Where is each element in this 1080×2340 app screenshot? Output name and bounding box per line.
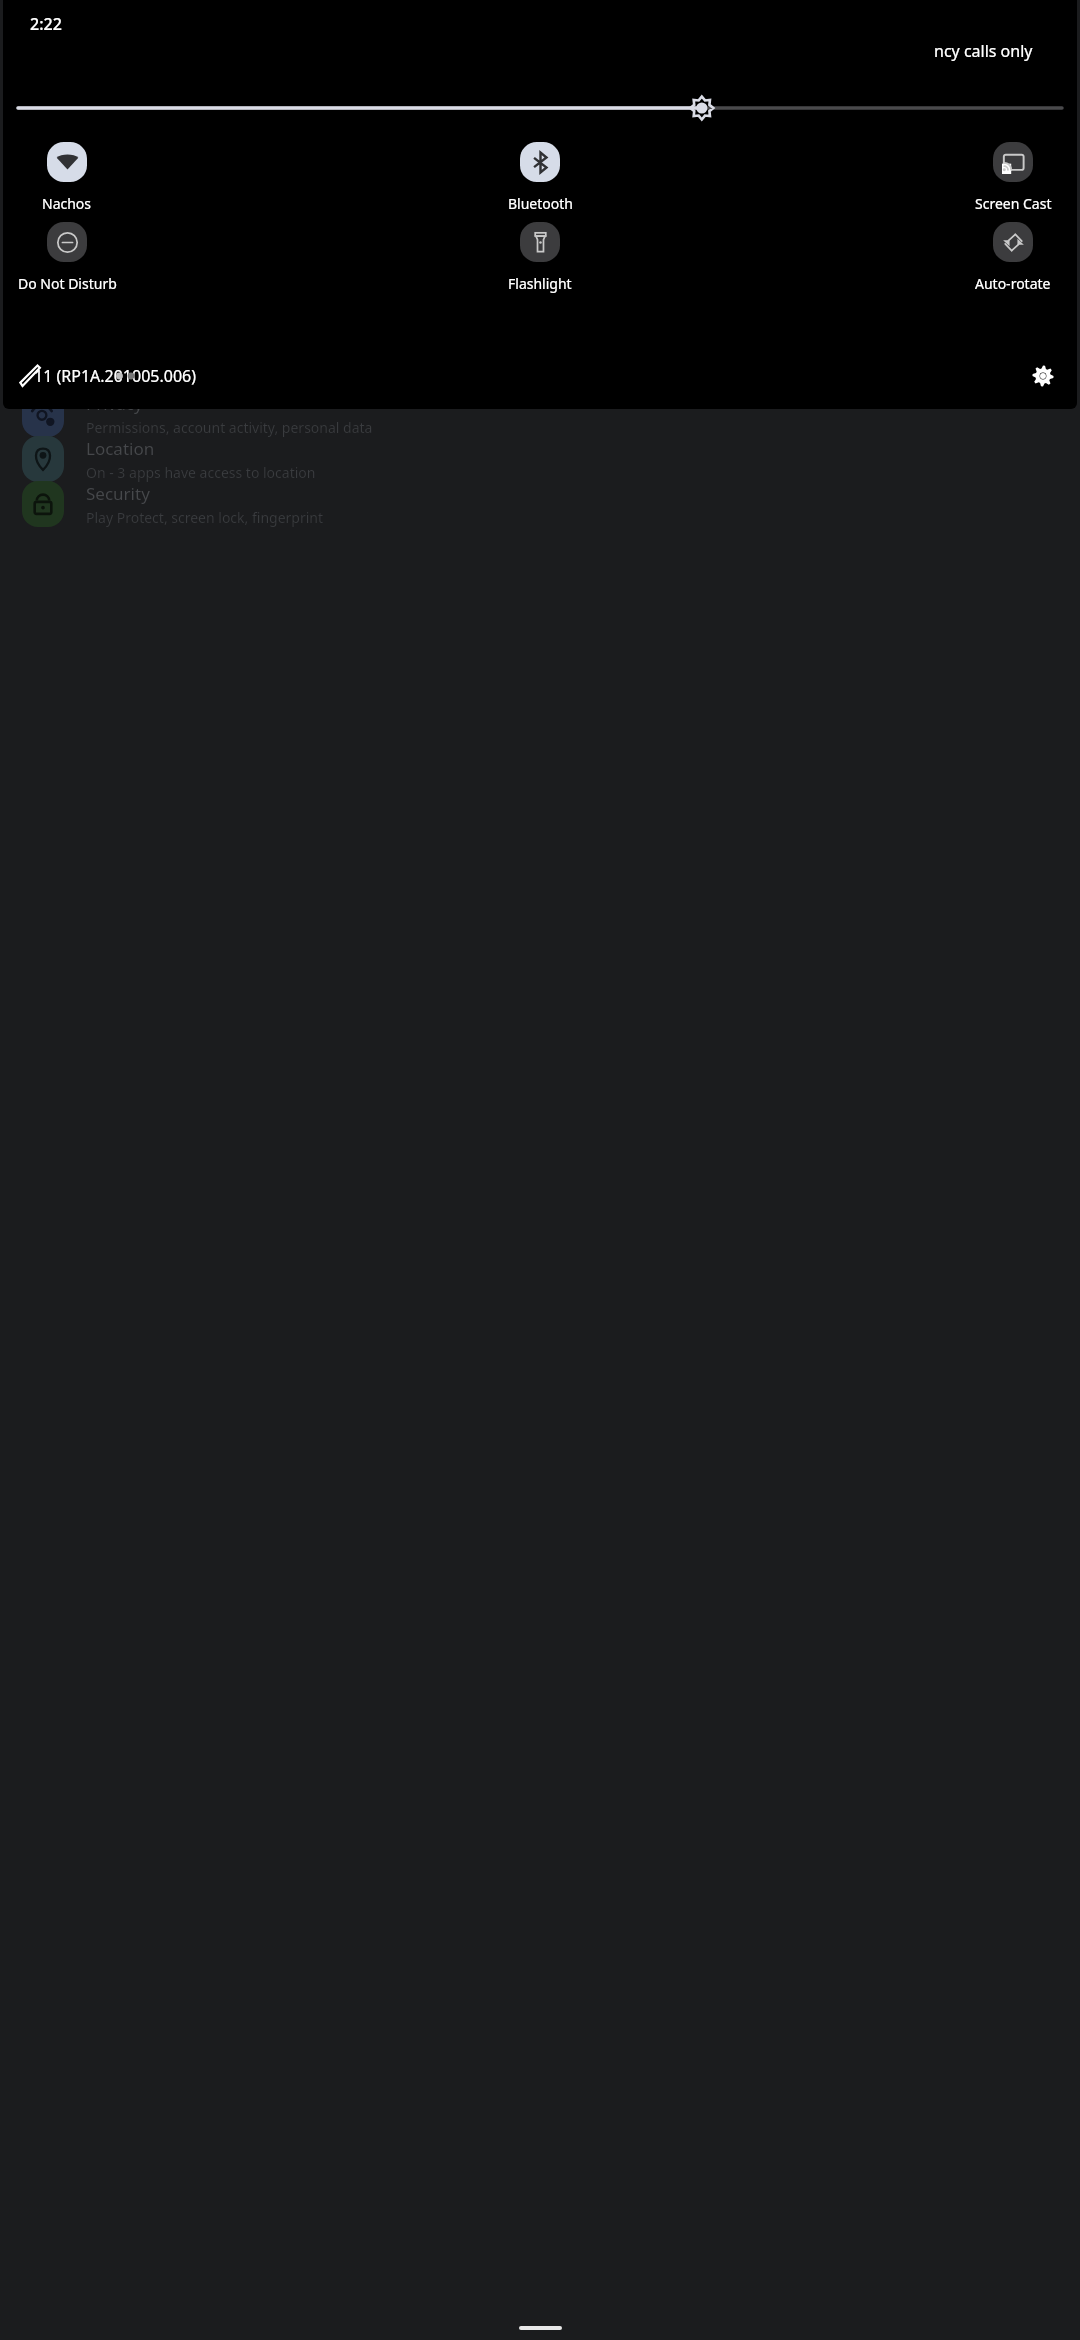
staticText: On - 3 apps have access to location xyxy=(86,463,316,482)
button[interactable]: Display xyxy=(0,242,1080,318)
staticText: Auto-rotate xyxy=(975,274,1051,293)
staticText: 14% used - 110 GB free xyxy=(86,373,238,392)
button[interactable]: Flashlight xyxy=(487,222,593,293)
staticText: Styles, wallpapers, screen timeout, font… xyxy=(86,284,373,303)
staticText: Nachos xyxy=(42,194,92,213)
staticText: 2:22 xyxy=(30,13,62,35)
button[interactable]: Do Not Disturb xyxy=(14,222,120,293)
button[interactable]: Privacy xyxy=(0,376,1080,452)
button[interactable] xyxy=(3,94,1077,122)
staticText: Play Protect, screen lock, fingerprint xyxy=(86,508,324,527)
button[interactable]: Security xyxy=(0,466,1080,542)
staticText: 11 (RP1A.201005.006) xyxy=(34,365,197,387)
staticText: Privacy xyxy=(86,392,143,415)
staticText: Flashlight xyxy=(508,274,572,293)
button[interactable]: Nachos xyxy=(14,142,120,213)
button[interactable]: Settings xyxy=(1021,354,1065,398)
button[interactable]: Location xyxy=(0,421,1080,497)
staticText: Display xyxy=(86,258,144,281)
staticText: Permissions, account activity, personal … xyxy=(86,418,373,437)
button[interactable]: Screen Cast xyxy=(960,142,1066,213)
staticText: Location xyxy=(86,437,155,460)
button[interactable]: Bluetooth xyxy=(487,142,593,213)
staticText: Security xyxy=(86,482,150,505)
staticText: Screen Cast xyxy=(975,194,1052,213)
button[interactable]: Auto-rotate xyxy=(960,222,1066,293)
button[interactable]: Storage xyxy=(0,331,1080,407)
staticText: ncy calls only xyxy=(934,40,1033,62)
staticText: Do Not Disturb xyxy=(18,274,117,293)
button[interactable]: Sound xyxy=(0,287,1080,363)
staticText: Bluetooth xyxy=(508,194,573,213)
button[interactable]: Edit tiles xyxy=(8,354,52,398)
